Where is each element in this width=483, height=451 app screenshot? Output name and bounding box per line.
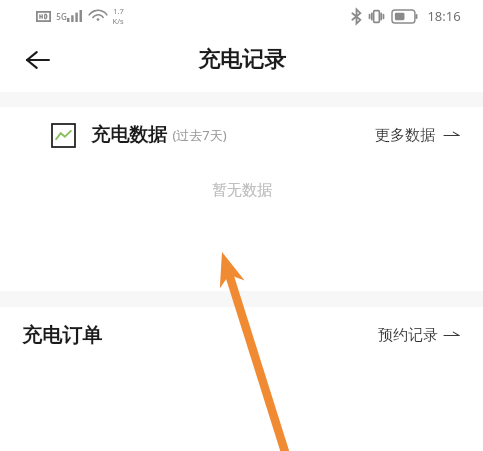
staticText: 充电数据 bbox=[91, 123, 167, 147]
button[interactable]: 充电订单 bbox=[0, 307, 483, 363]
staticText: K/s bbox=[112, 16, 124, 26]
staticText: 充电订单 bbox=[22, 323, 102, 348]
button[interactable]: 充电数据 bbox=[0, 107, 483, 163]
button[interactable]: 返回 bbox=[14, 36, 62, 84]
staticText: 暂无数据 bbox=[212, 181, 272, 200]
staticText: 充电记录 bbox=[198, 46, 286, 74]
staticText: 5G bbox=[56, 11, 67, 22]
staticText: (过去7天) bbox=[172, 126, 227, 144]
staticText: 18:16 bbox=[427, 7, 461, 25]
staticText: 预约记录 bbox=[378, 326, 438, 345]
staticText: 1.7 bbox=[113, 6, 124, 16]
staticText: 更多数据 bbox=[375, 126, 435, 145]
